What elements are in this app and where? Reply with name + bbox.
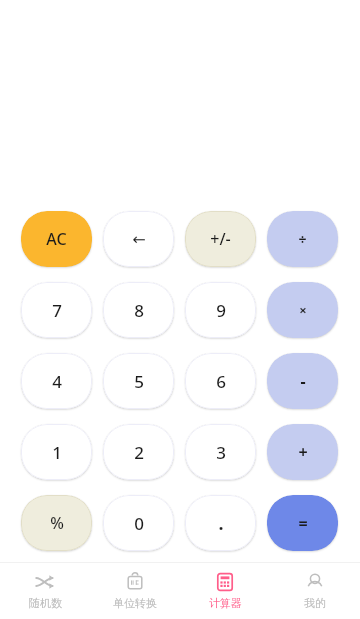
button[interactable]: AC (21, 211, 92, 267)
button[interactable]: Decimal point (185, 495, 256, 551)
button[interactable]: 0 (103, 495, 174, 551)
button[interactable]: 3 (185, 424, 256, 480)
button[interactable]: 8 (103, 282, 174, 338)
button[interactable]: Random number (0, 563, 90, 619)
button[interactable]: 9 (185, 282, 256, 338)
staticText: 3 (216, 441, 226, 464)
staticText: 4 (52, 370, 62, 393)
button[interactable]: 7 (21, 282, 92, 338)
staticText: AC (46, 228, 67, 250)
button[interactable]: 4 (21, 353, 92, 409)
staticText: = (298, 512, 308, 534)
staticText: 我的 (304, 596, 326, 610)
staticText: 计算器 (209, 596, 242, 610)
button[interactable]: Backspace (103, 211, 174, 267)
staticText: - (300, 370, 306, 392)
staticText: 6 (216, 370, 226, 393)
staticText: 2 (134, 441, 144, 464)
staticText: +/- (210, 228, 231, 250)
button[interactable]: Unit conversion (90, 563, 180, 619)
button[interactable]: Percent (21, 495, 92, 551)
staticText: ÷ (298, 230, 307, 249)
button[interactable]: Profile (270, 563, 360, 619)
button[interactable]: Calculator (180, 563, 270, 619)
staticText: 8 (134, 299, 144, 322)
button[interactable]: Divide (267, 211, 338, 267)
button[interactable]: Minus (267, 353, 338, 409)
button[interactable]: Plus (267, 424, 338, 480)
button[interactable]: 2 (103, 424, 174, 480)
staticText: 5 (134, 370, 144, 393)
staticText: 1 (52, 441, 62, 464)
button[interactable]: 5 (103, 353, 174, 409)
staticText: × (299, 301, 307, 319)
button[interactable]: 6 (185, 353, 256, 409)
button[interactable]: 1 (21, 424, 92, 480)
button[interactable]: Plus minus (185, 211, 256, 267)
staticText: 7 (52, 299, 62, 322)
staticText: . (218, 511, 224, 536)
staticText: % (50, 512, 64, 534)
staticText: 单位转换 (113, 596, 157, 610)
staticText: ← (132, 230, 146, 249)
button[interactable]: Multiply (267, 282, 338, 338)
staticText: 随机数 (29, 596, 62, 610)
button[interactable]: Equals (267, 495, 338, 551)
staticText: 0 (134, 512, 144, 535)
staticText: 9 (216, 299, 226, 322)
staticText: + (298, 441, 308, 463)
